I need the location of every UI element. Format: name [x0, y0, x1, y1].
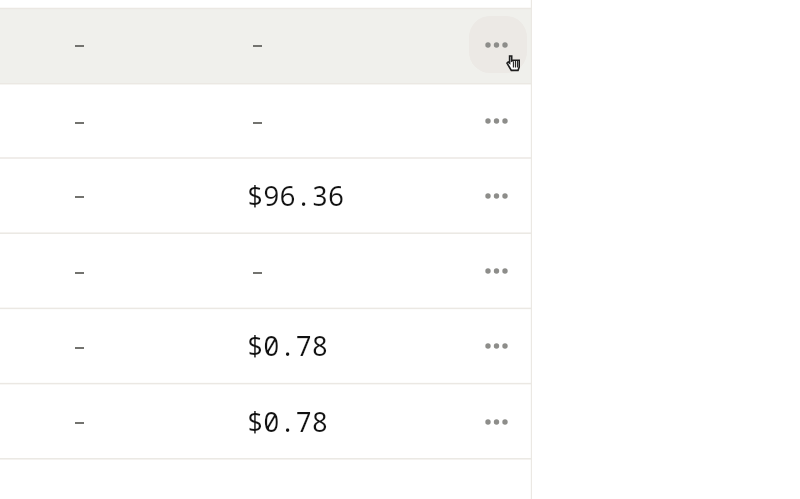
button[interactable]: More options	[469, 317, 527, 374]
button[interactable]: More options	[469, 393, 527, 450]
button[interactable]: More options	[469, 242, 527, 299]
button[interactable]	[0, 9, 532, 84]
staticText: $0.78	[247, 327, 328, 364]
staticText: $96.36	[247, 177, 345, 214]
button[interactable]	[0, 158, 532, 233]
button[interactable]	[0, 308, 532, 383]
staticText: $0.78	[247, 403, 328, 440]
button[interactable]	[0, 233, 532, 308]
button[interactable]: More options	[469, 92, 527, 149]
button[interactable]	[0, 84, 532, 158]
button[interactable]: More options	[469, 16, 527, 73]
button[interactable]	[0, 384, 532, 459]
button[interactable]: More options	[469, 167, 527, 224]
